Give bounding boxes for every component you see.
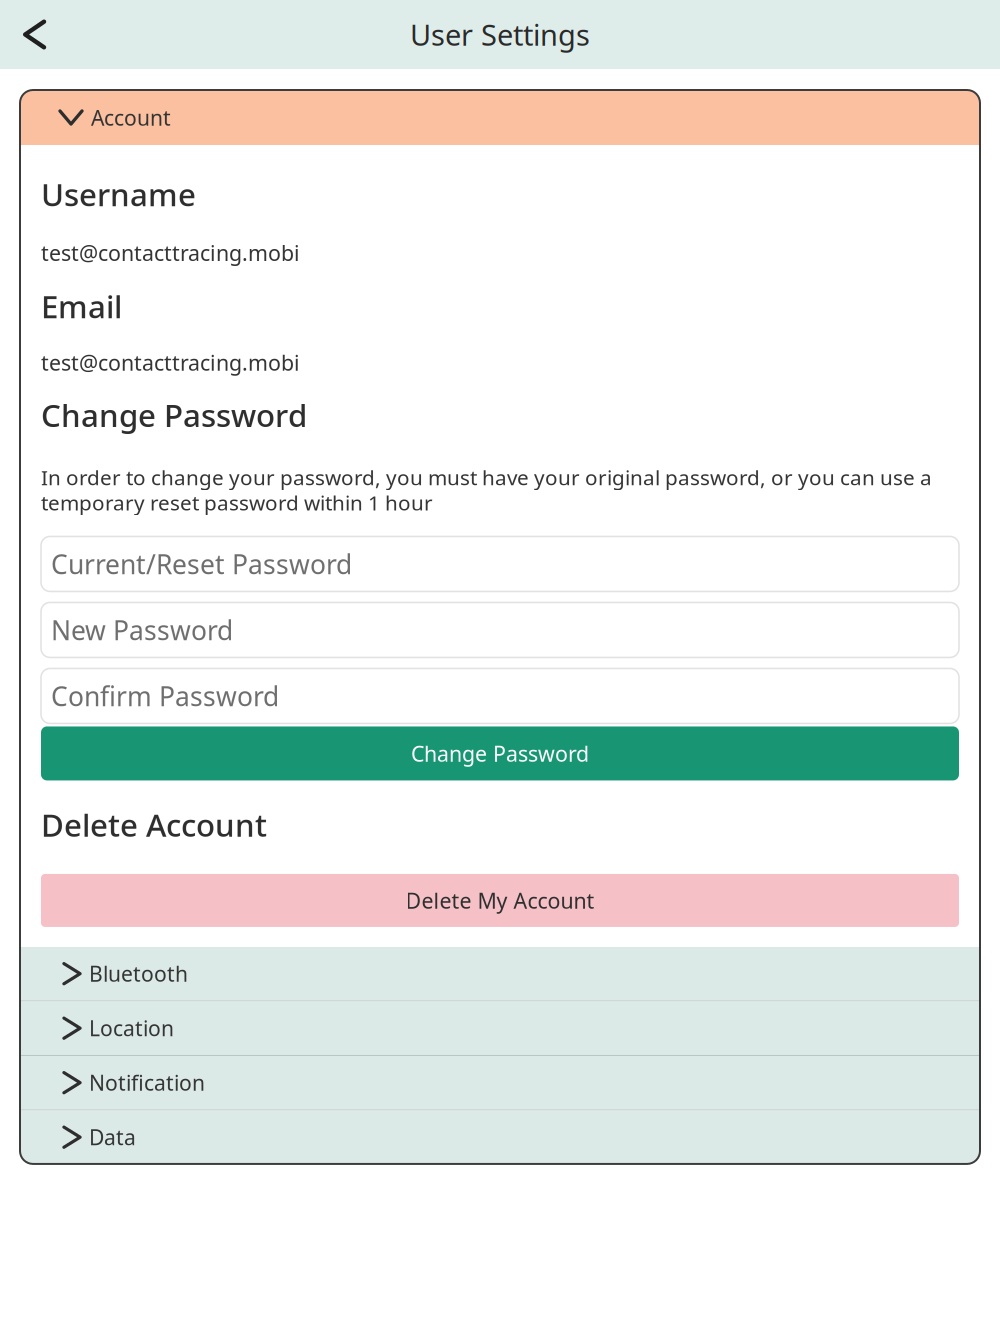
staticText: In order to change your password, you mu… <box>41 463 932 516</box>
staticText: Bluetooth <box>89 959 188 988</box>
staticText: Notification <box>89 1068 205 1097</box>
button[interactable]: Data <box>20 1110 980 1164</box>
button[interactable]: Confirm Password <box>41 668 959 723</box>
button[interactable]: Change Password <box>41 726 959 780</box>
staticText: test@contacttracing.mobi <box>41 238 300 267</box>
button[interactable]: Notification <box>20 1056 980 1109</box>
staticText: Data <box>89 1123 136 1151</box>
staticText: New Password <box>51 612 233 648</box>
staticText: Location <box>89 1014 174 1042</box>
button[interactable]: Bluetooth <box>20 947 980 1000</box>
staticText: Username <box>41 173 196 215</box>
button[interactable]: Current/Reset Password <box>41 536 959 591</box>
staticText: Email <box>41 285 122 327</box>
staticText: Account <box>91 103 171 132</box>
staticText: Delete Account <box>41 803 267 846</box>
staticText: Change Password <box>41 394 307 436</box>
staticText: Delete My Account <box>405 886 594 915</box>
button[interactable]: Location <box>20 1001 980 1055</box>
button[interactable]: Account <box>20 90 980 145</box>
staticText: Current/Reset Password <box>51 546 352 582</box>
button[interactable]: Delete My Account <box>41 874 959 927</box>
button[interactable]: New Password <box>41 602 959 657</box>
staticText: Confirm Password <box>51 678 279 714</box>
staticText: Change Password <box>411 739 589 768</box>
staticText: test@contacttracing.mobi <box>41 348 300 377</box>
staticText: User Settings <box>410 15 590 54</box>
button[interactable]: Back <box>0 7 60 61</box>
